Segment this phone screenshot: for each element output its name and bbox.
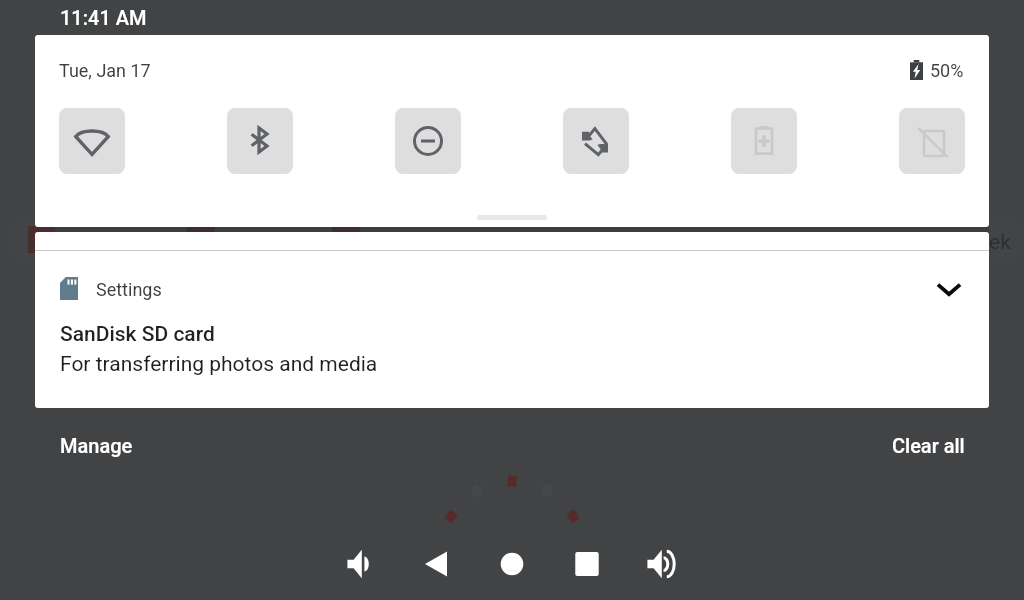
- staticText: 11:41 AM: [60, 6, 147, 29]
- staticText: Clear all: [892, 434, 965, 457]
- staticText: 50%: [930, 60, 964, 81]
- button[interactable]: Screen cast: [899, 108, 965, 174]
- staticText: ek: [989, 230, 1011, 255]
- button[interactable]: Do not disturb: [395, 108, 461, 174]
- button[interactable]: Home: [490, 542, 534, 586]
- button[interactable]: Settings: [35, 232, 989, 408]
- button[interactable]: Volume up: [640, 542, 684, 586]
- button[interactable]: Manage: [60, 434, 133, 457]
- button[interactable]: Recents: [565, 542, 609, 586]
- button[interactable]: Expand notification: [929, 269, 969, 309]
- button[interactable]: Auto-rotate: [563, 108, 629, 174]
- staticText: Manage: [60, 434, 133, 457]
- button[interactable]: Volume down: [340, 542, 384, 586]
- staticText: SanDisk SD card: [60, 322, 215, 347]
- button[interactable]: Battery Saver: [731, 108, 797, 174]
- button[interactable]: Bluetooth: [227, 108, 293, 174]
- button[interactable]: Wi-Fi: [59, 108, 125, 174]
- staticText: For transferring photos and media: [60, 352, 378, 377]
- staticText: Tue, Jan 17: [59, 60, 151, 81]
- button[interactable]: Clear all: [892, 434, 965, 457]
- staticText: Settings: [96, 279, 162, 300]
- button[interactable]: Back: [414, 542, 458, 586]
